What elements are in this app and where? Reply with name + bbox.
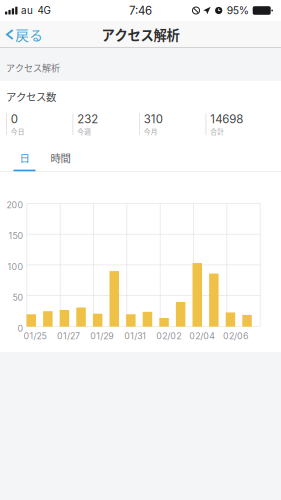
staticText: 02/04 — [189, 331, 215, 341]
button[interactable]: 戻る — [0, 21, 51, 48]
staticText: 7:46 — [129, 4, 152, 17]
staticText: 時間 — [50, 150, 70, 165]
staticText: 200 — [6, 200, 23, 210]
staticText: 今月 — [144, 126, 158, 136]
staticText: au — [21, 4, 33, 16]
staticText: 01/25 — [23, 331, 46, 341]
staticText: 4G — [37, 4, 50, 16]
staticText: 今日 — [11, 126, 25, 136]
staticText: 0 — [17, 323, 23, 334]
button[interactable]: 時間 — [42, 150, 78, 172]
staticText: 14698 — [210, 112, 243, 126]
staticText: 01/31 — [124, 331, 146, 341]
staticText: 今週 — [77, 126, 91, 136]
staticText: 合計 — [210, 126, 224, 136]
staticText: 0 — [11, 112, 18, 126]
staticText: 310 — [144, 112, 163, 126]
staticText: 戻る — [15, 25, 43, 44]
staticText: 150 — [8, 230, 23, 241]
staticText: 02/02 — [156, 331, 181, 341]
staticText: 日 — [19, 150, 29, 165]
staticText: 02/06 — [223, 331, 248, 341]
staticText: 50 — [12, 292, 23, 303]
button[interactable]: 日 — [6, 150, 42, 172]
staticText: 232 — [77, 112, 98, 126]
staticText: アクセス解析 — [101, 25, 179, 44]
staticText: アクセス数 — [6, 89, 56, 104]
staticText: 01/27 — [57, 331, 80, 341]
staticText: アクセス解析 — [6, 61, 60, 74]
staticText: 100 — [7, 261, 23, 272]
staticText: 01/29 — [90, 331, 113, 341]
staticText: 95% — [227, 4, 249, 17]
